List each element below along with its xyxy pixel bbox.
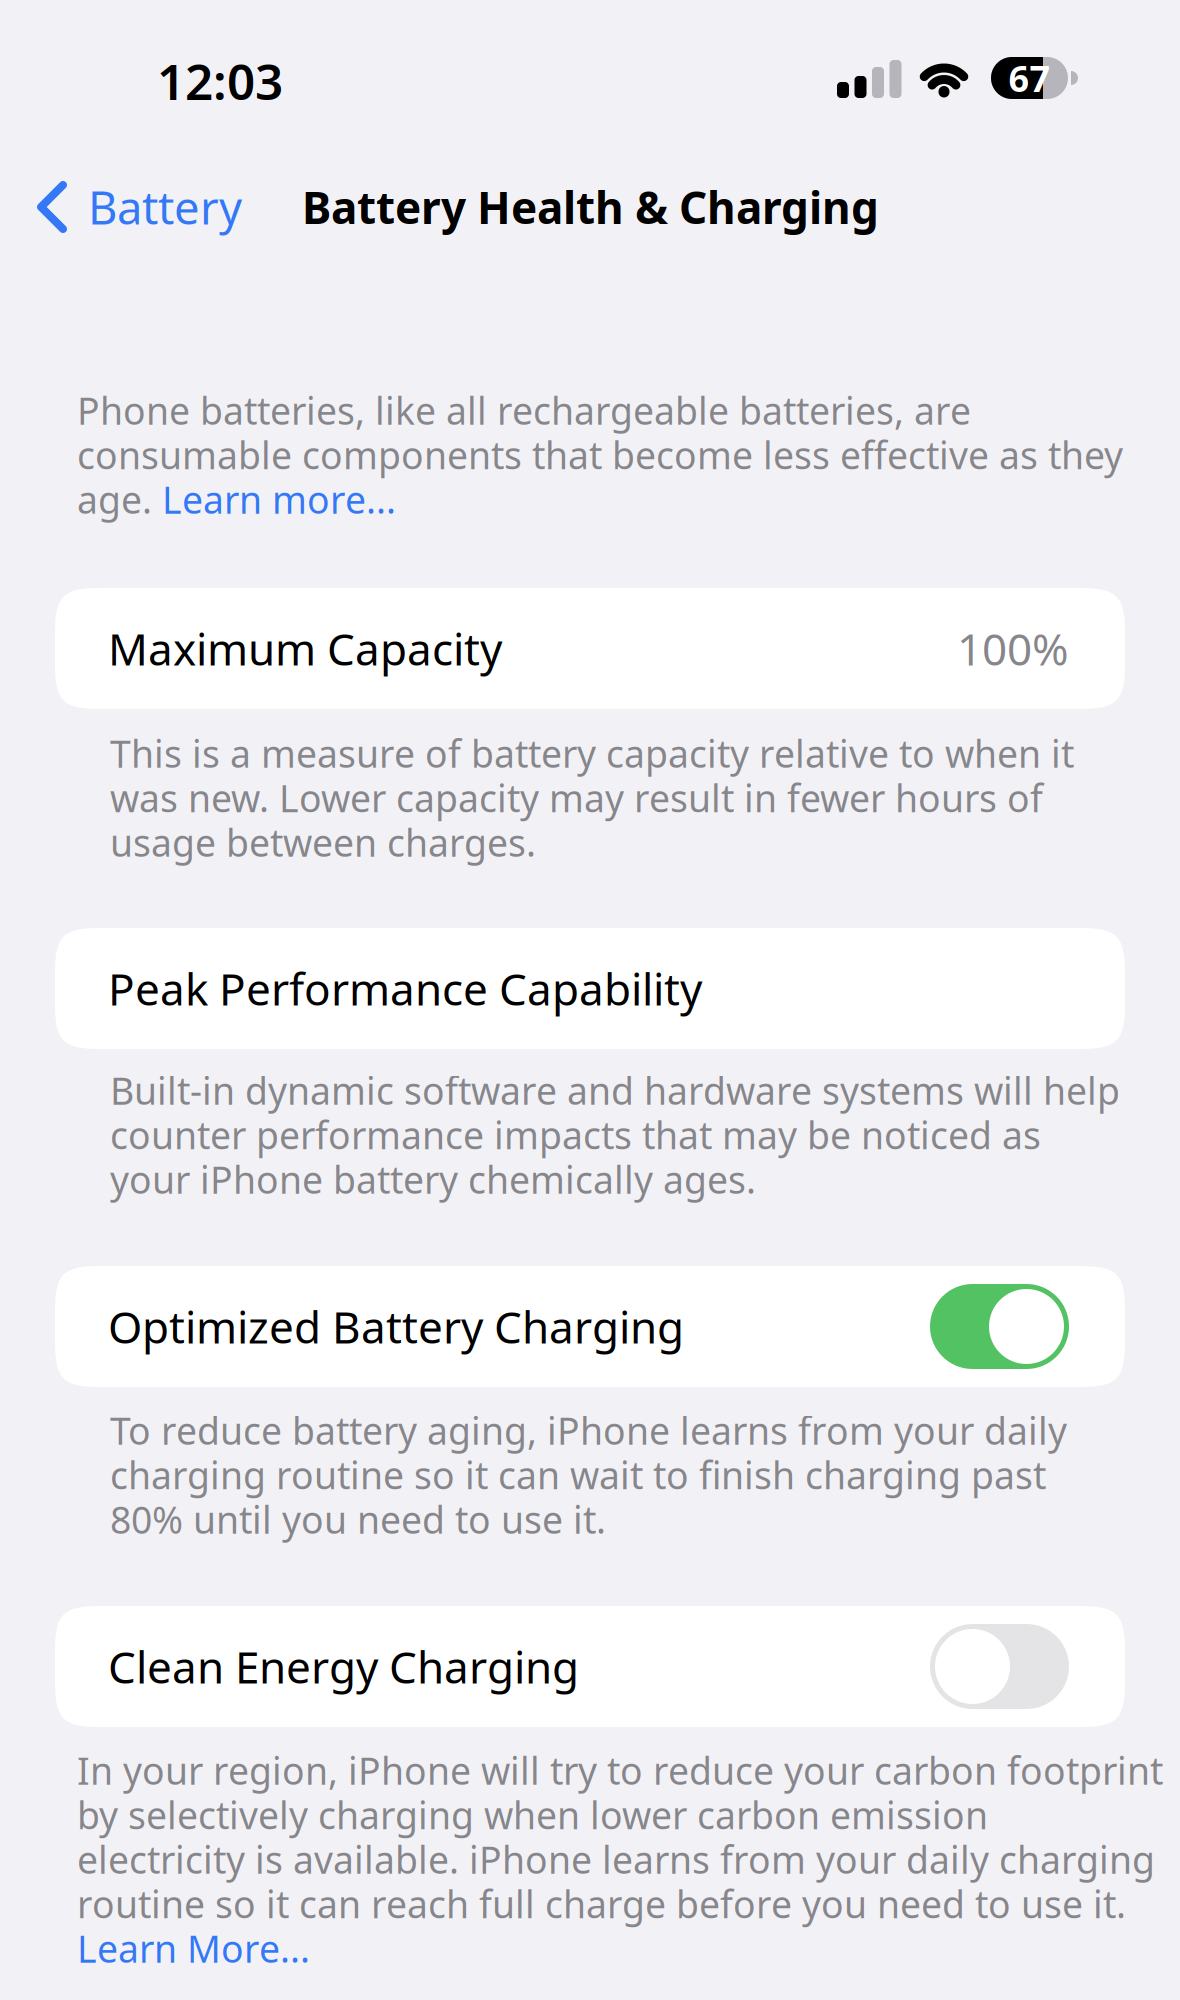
staticText: This is a measure of battery capacity re… xyxy=(110,728,1074,778)
staticText: 12:03 xyxy=(157,48,283,113)
staticText: consumable components that become less e… xyxy=(77,430,1123,480)
staticText: electricity is available. iPhone learns … xyxy=(77,1834,1155,1884)
button[interactable]: Peak Performance Capability xyxy=(55,928,1125,1049)
staticText: counter performance impacts that may be … xyxy=(110,1110,1041,1160)
staticText: To reduce battery aging, iPhone learns f… xyxy=(110,1405,1067,1455)
staticText: Built-in dynamic software and hardware s… xyxy=(110,1065,1120,1115)
staticText: usage between charges. xyxy=(110,817,536,867)
staticText: by selectively charging when lower carbo… xyxy=(77,1790,988,1840)
staticText: charging routine so it can wait to finis… xyxy=(110,1450,1046,1500)
staticText: Maximum Capacity xyxy=(108,619,502,678)
staticText: routine so it can reach full charge befo… xyxy=(77,1879,1126,1929)
staticText: your iPhone battery chemically ages. xyxy=(110,1154,756,1204)
staticText: 67 xyxy=(1008,54,1050,102)
staticText: Battery Health & Charging xyxy=(302,178,879,236)
staticText: age. xyxy=(77,474,162,524)
staticText: Battery xyxy=(88,177,242,237)
button[interactable]: Maximum Capacity xyxy=(55,588,1125,709)
button[interactable]: Learn more... xyxy=(162,474,396,524)
button[interactable]: Learn More... xyxy=(77,1923,310,1973)
staticText: Clean Energy Charging xyxy=(108,1637,579,1696)
staticText: Learn More... xyxy=(77,1923,310,1973)
button[interactable]: Optimized Battery Charging xyxy=(55,1266,1125,1387)
staticText: Peak Performance Capability xyxy=(108,959,702,1018)
staticText: 80% until you need to use it. xyxy=(110,1494,606,1544)
staticText: Phone batteries, like all rechargeable b… xyxy=(77,385,971,435)
staticText: In your region, iPhone will try to reduc… xyxy=(77,1745,1163,1795)
staticText: Optimized Battery Charging xyxy=(108,1297,684,1356)
staticText: was new. Lower capacity may result in fe… xyxy=(110,773,1043,823)
button[interactable]: Battery xyxy=(0,155,260,259)
staticText: Learn more... xyxy=(162,474,396,524)
staticText: 100% xyxy=(957,619,1069,678)
button[interactable]: Clean Energy Charging xyxy=(55,1606,1125,1727)
